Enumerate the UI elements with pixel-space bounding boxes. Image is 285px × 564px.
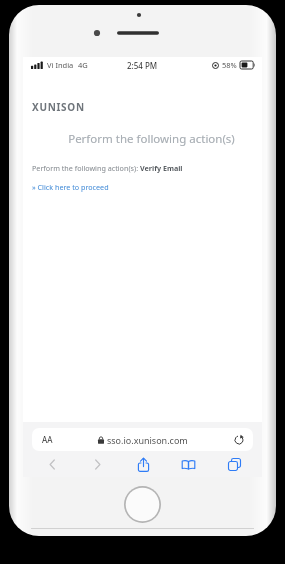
staticText: sso.io.xunison.com	[107, 434, 188, 446]
button[interactable]: Home	[124, 486, 161, 523]
staticText: 4G	[78, 60, 88, 70]
button[interactable]: » Click here to proceed	[32, 182, 109, 192]
button[interactable]: Tabs	[217, 452, 251, 476]
button[interactable]: Forward	[80, 452, 114, 476]
staticText: Perform the following action(s)	[51, 131, 252, 147]
staticText: AA	[42, 434, 53, 445]
button[interactable]: Share	[126, 452, 160, 476]
staticText: XUNISON	[32, 100, 85, 114]
button[interactable]: AA	[32, 428, 253, 451]
staticText: 2:54 PM	[127, 60, 158, 71]
staticText: Vi India	[47, 60, 74, 70]
staticText: » Click here to proceed	[32, 182, 109, 192]
button[interactable]: Bookmarks	[171, 452, 205, 476]
staticText: Perform the following action(s): Verify …	[32, 163, 183, 173]
button[interactable]: Back	[35, 452, 69, 476]
button[interactable]: Reload	[234, 435, 244, 445]
staticText: 58%	[222, 60, 237, 70]
